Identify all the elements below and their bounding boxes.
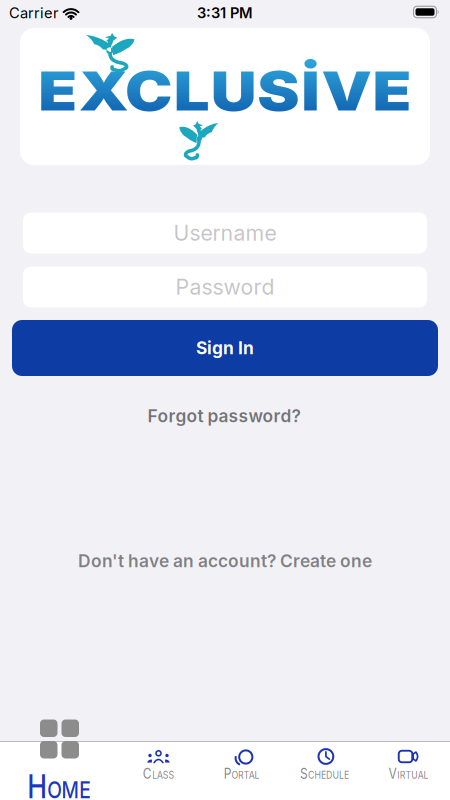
button[interactable]: S — [284, 742, 367, 800]
staticText: Sign In — [196, 338, 254, 358]
button[interactable]: Don't have an account? Create one — [78, 551, 372, 571]
staticText: ORTAL — [229, 769, 263, 781]
staticText: V — [384, 765, 394, 782]
staticText: Password — [175, 274, 274, 300]
staticText: Username — [173, 220, 276, 246]
button[interactable]: Forgot password? — [147, 406, 300, 426]
staticText: C — [139, 765, 150, 782]
staticText: IRTUAL — [395, 769, 433, 781]
button[interactable]: P — [199, 742, 284, 800]
button[interactable]: C — [118, 742, 199, 800]
button[interactable]: Username — [23, 212, 427, 253]
staticText: Forgot password? — [147, 406, 300, 426]
staticText: H — [20, 766, 44, 800]
staticText: CHEDULE — [304, 769, 354, 781]
button[interactable]: H — [0, 710, 118, 800]
staticText: P — [220, 765, 229, 782]
button[interactable]: Password — [23, 266, 427, 307]
staticText: OME — [44, 775, 98, 800]
button[interactable]: Sign In — [12, 320, 438, 376]
staticText: S — [295, 765, 304, 782]
staticText: 3:31 PM — [197, 4, 253, 22]
staticText: Carrier — [9, 4, 59, 22]
button[interactable]: V — [367, 742, 450, 800]
staticText: Don't have an account? Create one — [78, 551, 372, 571]
staticText: LASS — [151, 769, 178, 781]
